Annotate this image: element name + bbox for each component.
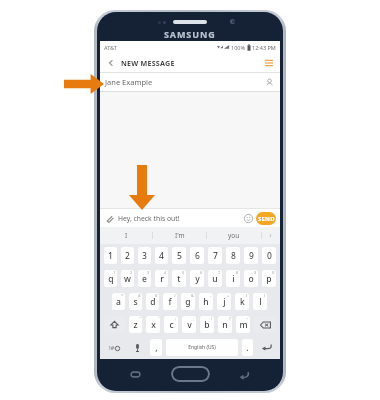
button[interactable]: i — [226, 270, 240, 287]
staticText: 1 — [108, 250, 113, 262]
button[interactable]: Recents — [129, 368, 142, 381]
button[interactable]: e — [138, 270, 151, 287]
button[interactable]: Back — [238, 368, 251, 381]
button[interactable]: Attach file — [104, 213, 115, 224]
button[interactable]: d — [146, 293, 159, 310]
staticText: v — [187, 319, 192, 331]
button[interactable]: m — [236, 316, 250, 333]
button[interactable]: n — [218, 316, 232, 333]
staticText: 0 — [267, 250, 272, 262]
button[interactable]: c — [164, 316, 178, 333]
button[interactable]: 5 — [172, 247, 186, 264]
staticText: NEW MESSAGE — [121, 58, 175, 68]
button[interactable]: j — [217, 293, 231, 310]
button[interactable]: l — [253, 293, 267, 310]
staticText: 12:43 PM — [252, 44, 276, 51]
button[interactable]: Shift — [104, 316, 125, 333]
button[interactable]: 6 — [190, 247, 204, 264]
button[interactable]: 8 — [226, 247, 240, 264]
button[interactable]: q — [104, 270, 117, 287]
staticText: ! — [211, 316, 213, 321]
button[interactable]: More suggestions — [261, 227, 280, 244]
staticText: 1 — [113, 270, 116, 275]
button[interactable]: Enter — [257, 339, 276, 356]
button[interactable]: p — [262, 270, 276, 287]
staticText: 2 — [125, 250, 130, 262]
button[interactable]: I — [100, 227, 153, 244]
staticText: 9 — [249, 250, 254, 262]
staticText: ) — [264, 293, 266, 298]
staticText: a — [116, 296, 121, 308]
button[interactable]: x — [146, 316, 160, 333]
button[interactable]: z — [129, 316, 142, 333]
button[interactable]: More options — [262, 56, 275, 69]
staticText: k — [240, 296, 245, 308]
staticText: d — [150, 296, 156, 308]
button[interactable]: . — [242, 339, 253, 356]
staticText: , — [155, 342, 158, 354]
button[interactable]: Add contact — [264, 77, 275, 88]
staticText: z — [133, 319, 138, 331]
staticText: Hey, check this out! — [118, 214, 180, 223]
staticText: ? — [229, 316, 231, 321]
staticText: 100% — [231, 44, 246, 51]
button[interactable]: y — [190, 270, 204, 287]
button[interactable]: v — [182, 316, 196, 333]
button[interactable]: Backspace — [254, 316, 276, 333]
button[interactable]: Home — [171, 366, 210, 382]
staticText: o — [248, 273, 254, 285]
staticText: 9 — [254, 270, 257, 275]
staticText: c — [169, 319, 174, 331]
button[interactable]: h — [199, 293, 213, 310]
staticText: j — [223, 296, 226, 308]
staticText: m — [239, 319, 248, 331]
staticText: & — [191, 293, 194, 298]
staticText: / — [174, 293, 176, 298]
button[interactable]: g — [181, 293, 195, 310]
button[interactable]: 2 — [121, 247, 134, 264]
staticText: ' — [158, 316, 159, 321]
staticText: I'm — [175, 231, 185, 240]
staticText: s — [133, 296, 138, 308]
staticText: x — [151, 319, 156, 331]
staticText: + — [227, 293, 230, 298]
button[interactable]: English (US) — [166, 339, 238, 356]
button[interactable]: 3 — [138, 247, 151, 264]
button[interactable]: 1 — [104, 247, 117, 264]
staticText: 5 — [182, 270, 185, 275]
button[interactable]: I'm — [153, 227, 207, 244]
button[interactable]: 0 — [262, 247, 276, 264]
staticText: English (US) — [188, 344, 216, 351]
staticText: - — [210, 293, 212, 298]
button[interactable]: 7 — [208, 247, 222, 264]
button[interactable]: o — [244, 270, 258, 287]
button[interactable]: Voice input — [129, 339, 146, 356]
button[interactable]: k — [235, 293, 249, 310]
staticText: h — [203, 296, 209, 308]
button[interactable]: t — [172, 270, 186, 287]
staticText: you — [228, 231, 240, 240]
button[interactable]: you — [207, 227, 261, 244]
staticText: w — [124, 273, 131, 285]
staticText: 6 — [200, 270, 203, 275]
button[interactable]: u — [208, 270, 222, 287]
staticText: 7 — [218, 270, 221, 275]
button[interactable]: 9 — [244, 247, 258, 264]
button[interactable]: Symbols — [104, 339, 125, 356]
button[interactable]: b — [200, 316, 214, 333]
staticText: 4 — [159, 250, 164, 262]
staticText: 8 — [231, 250, 236, 262]
button[interactable]: a — [112, 293, 125, 310]
button[interactable]: w — [121, 270, 134, 287]
button[interactable]: , — [150, 339, 162, 356]
button[interactable]: s — [129, 293, 142, 310]
staticText: p — [266, 273, 272, 285]
button[interactable]: f — [163, 293, 177, 310]
button[interactable]: SEND — [256, 212, 276, 225]
staticText: e — [142, 273, 147, 285]
button[interactable]: 4 — [155, 247, 168, 264]
button[interactable]: Back — [105, 57, 117, 69]
staticText: y — [195, 273, 200, 285]
button[interactable]: Emoji — [242, 212, 254, 224]
button[interactable]: r — [155, 270, 168, 287]
